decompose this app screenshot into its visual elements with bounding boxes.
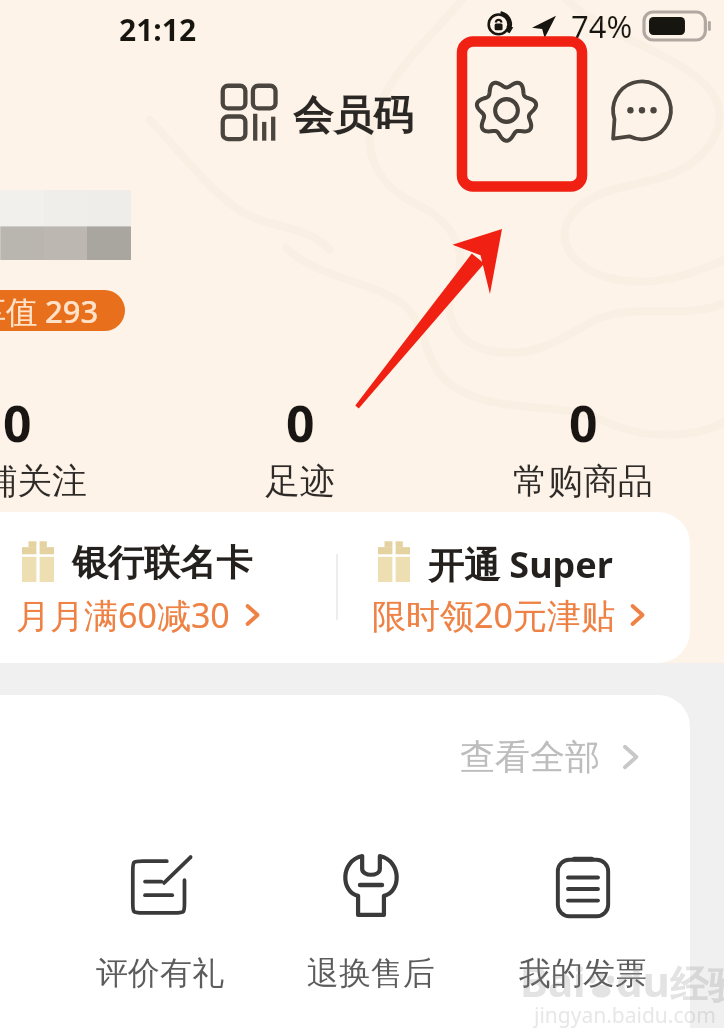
button[interactable]: 会员码: [221, 84, 413, 142]
button[interactable]: [0, 512, 336, 663]
staticText: 0: [569, 389, 598, 457]
staticText: 查看全部: [460, 735, 600, 779]
button[interactable]: More: [606, 76, 678, 148]
staticText: 退换售后: [307, 953, 435, 993]
staticText: Bai: [520, 952, 586, 1009]
button[interactable]: 0: [210, 389, 390, 501]
staticText: 会员码: [293, 90, 413, 140]
staticText: 银行联名卡: [72, 540, 252, 585]
button[interactable]: 我的发票: [498, 838, 668, 1008]
staticText: du: [616, 952, 670, 1009]
staticText: 开通 Super: [428, 540, 613, 589]
button[interactable]: 退换售后: [286, 838, 456, 1008]
staticText: 0: [286, 389, 315, 457]
button[interactable]: Settings: [470, 74, 542, 146]
button[interactable]: 京享值 293: [0, 290, 125, 331]
staticText: 月月满60减30: [16, 592, 230, 638]
staticText: 我的发票: [519, 953, 647, 993]
staticText: 足迹: [265, 459, 335, 501]
staticText: 店铺关注: [0, 459, 87, 501]
staticText: 京享值 293: [0, 290, 99, 331]
staticText: 限时领20元津贴: [372, 592, 615, 638]
staticText: 常购商品: [513, 459, 653, 501]
button[interactable]: 0: [493, 389, 673, 501]
staticText: 21:12: [119, 9, 197, 50]
staticText: 0: [3, 389, 32, 457]
button[interactable]: 评价有礼: [75, 838, 245, 1008]
staticText: 74%: [571, 5, 633, 47]
staticText: 评价有礼: [96, 953, 224, 993]
staticText: 经验: [670, 961, 724, 1009]
button[interactable]: [336, 512, 690, 663]
button[interactable]: 查看全部: [460, 735, 646, 779]
staticText: jingyan.baidu.com: [534, 1001, 716, 1028]
button[interactable]: 0: [0, 389, 107, 501]
